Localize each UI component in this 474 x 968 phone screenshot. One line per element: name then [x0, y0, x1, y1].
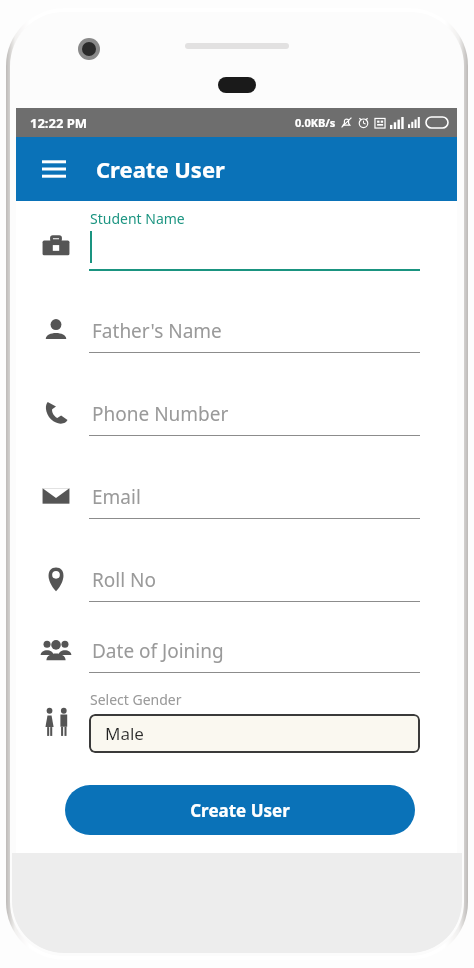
staticText: Create User	[96, 154, 225, 184]
staticText: Roll No	[92, 567, 156, 593]
staticText: 0.0KB/s	[295, 115, 336, 130]
button[interactable]: Date of Joining	[89, 630, 420, 676]
staticText: Father's Name	[92, 318, 222, 344]
button[interactable]	[89, 227, 420, 273]
staticText: Student Name	[90, 209, 185, 228]
staticText: Phone Number	[92, 401, 229, 427]
button[interactable]: Father's Name	[89, 310, 420, 356]
button[interactable]: Phone Number	[89, 393, 420, 439]
staticText: Date of Joining	[92, 638, 224, 664]
staticText: Select Gender	[90, 690, 182, 709]
staticText: Email	[92, 484, 141, 510]
button[interactable]: Male	[89, 714, 420, 753]
staticText: 12:22 PM	[30, 114, 88, 132]
button[interactable]: Email	[89, 476, 420, 522]
staticText: Male	[105, 722, 144, 745]
button[interactable]: Create User	[65, 785, 415, 835]
staticText: Create User	[190, 799, 290, 822]
button[interactable]: Open navigation menu	[34, 149, 74, 189]
button[interactable]: Roll No	[89, 559, 420, 605]
